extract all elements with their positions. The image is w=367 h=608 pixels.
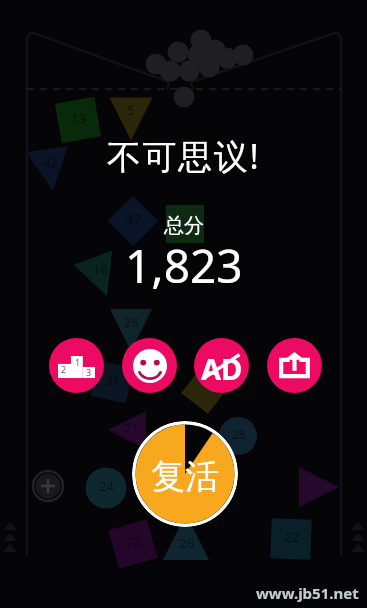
staticText: 42 — [43, 153, 58, 171]
staticText: 71 — [124, 419, 139, 437]
staticText: 1 — [75, 356, 81, 368]
staticText: 总分 — [164, 213, 204, 238]
staticText: 3 — [86, 366, 92, 378]
staticText: 1,823 — [125, 234, 243, 297]
staticText: 28 — [124, 313, 139, 331]
button[interactable]: Share — [267, 338, 322, 393]
staticText: AD — [201, 349, 243, 383]
staticText: 31 — [105, 371, 120, 389]
button[interactable]: 复活 — [132, 421, 238, 527]
staticText: 26 — [179, 534, 194, 552]
staticText: 5 — [127, 101, 135, 119]
staticText: 不可思议! — [107, 133, 261, 179]
staticText: 73 — [126, 533, 141, 551]
button[interactable]: Rate us — [122, 338, 177, 393]
staticText: 复活 — [151, 455, 219, 498]
staticText: www.jb51.net — [256, 583, 359, 603]
staticText: 28 — [231, 425, 246, 443]
button[interactable]: Leaderboard — [49, 338, 104, 393]
staticText: 47 — [126, 210, 141, 228]
staticText: 2 — [61, 363, 67, 375]
staticText: 24 — [99, 477, 114, 495]
staticText: 13 — [71, 109, 86, 127]
button[interactable]: Remove ads — [194, 338, 249, 393]
staticText: 22 — [284, 528, 299, 546]
staticText: 18 — [93, 260, 108, 278]
